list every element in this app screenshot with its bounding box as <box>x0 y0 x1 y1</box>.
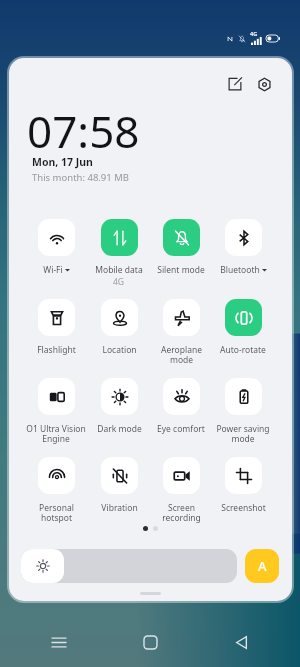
staticText: 4G <box>113 276 125 288</box>
button[interactable]: Screenshot <box>212 457 274 529</box>
button[interactable]: Location <box>88 299 150 371</box>
staticText: Eye comfort <box>157 423 205 435</box>
staticText: A <box>258 557 267 575</box>
staticText: Power saving mode <box>216 423 270 444</box>
button[interactable]: Edit quick settings <box>221 70 249 98</box>
staticText: Personal hotspot <box>39 502 74 523</box>
button[interactable]: Flashlight <box>25 299 87 371</box>
staticText: Aeroplane mode <box>161 344 202 365</box>
staticText: Flashlight <box>37 344 76 356</box>
staticText: Auto-rotate <box>220 344 266 356</box>
staticText: 07:58 <box>27 101 140 161</box>
staticText: Screenshot <box>221 502 266 514</box>
button[interactable]: Aeroplane mode <box>150 299 212 371</box>
staticText: Screen recording <box>162 502 201 523</box>
staticText: Bluetooth <box>220 264 260 276</box>
staticText: Wi-Fi <box>43 264 63 276</box>
button[interactable]: Recent apps <box>40 623 78 661</box>
button[interactable] <box>21 549 237 583</box>
button[interactable]: Dark mode <box>88 378 150 450</box>
staticText: This month: 48.91 MB <box>32 171 129 184</box>
staticText: Dark mode <box>97 423 142 435</box>
button[interactable]: Bluetooth <box>212 219 274 291</box>
button[interactable]: Settings <box>250 70 278 98</box>
button[interactable]: Auto-rotate <box>212 299 274 371</box>
staticText: Vibration <box>101 502 138 514</box>
button[interactable]: Eye comfort <box>150 378 212 450</box>
staticText: Location <box>102 344 137 356</box>
button[interactable]: Home <box>131 623 169 661</box>
button[interactable]: Back <box>222 623 260 661</box>
button[interactable]: O1 Ultra Vision Engine <box>25 378 87 450</box>
staticText: Silent mode <box>157 264 205 276</box>
button[interactable]: Personal hotspot <box>25 457 87 529</box>
staticText: O1 Ultra Vision Engine <box>26 423 86 444</box>
button[interactable]: Silent mode <box>150 219 212 291</box>
staticText: Mobile data <box>95 264 143 276</box>
staticText: 4G <box>250 30 258 37</box>
button[interactable]: Wi-Fi <box>25 219 87 291</box>
button[interactable]: Mobile data <box>88 219 150 291</box>
button[interactable]: A <box>245 549 279 583</box>
button[interactable]: Screen recording <box>150 457 212 529</box>
staticText: Mon, 17 Jun <box>32 155 93 169</box>
button[interactable]: Power saving mode <box>212 378 274 450</box>
button[interactable]: Vibration <box>88 457 150 529</box>
